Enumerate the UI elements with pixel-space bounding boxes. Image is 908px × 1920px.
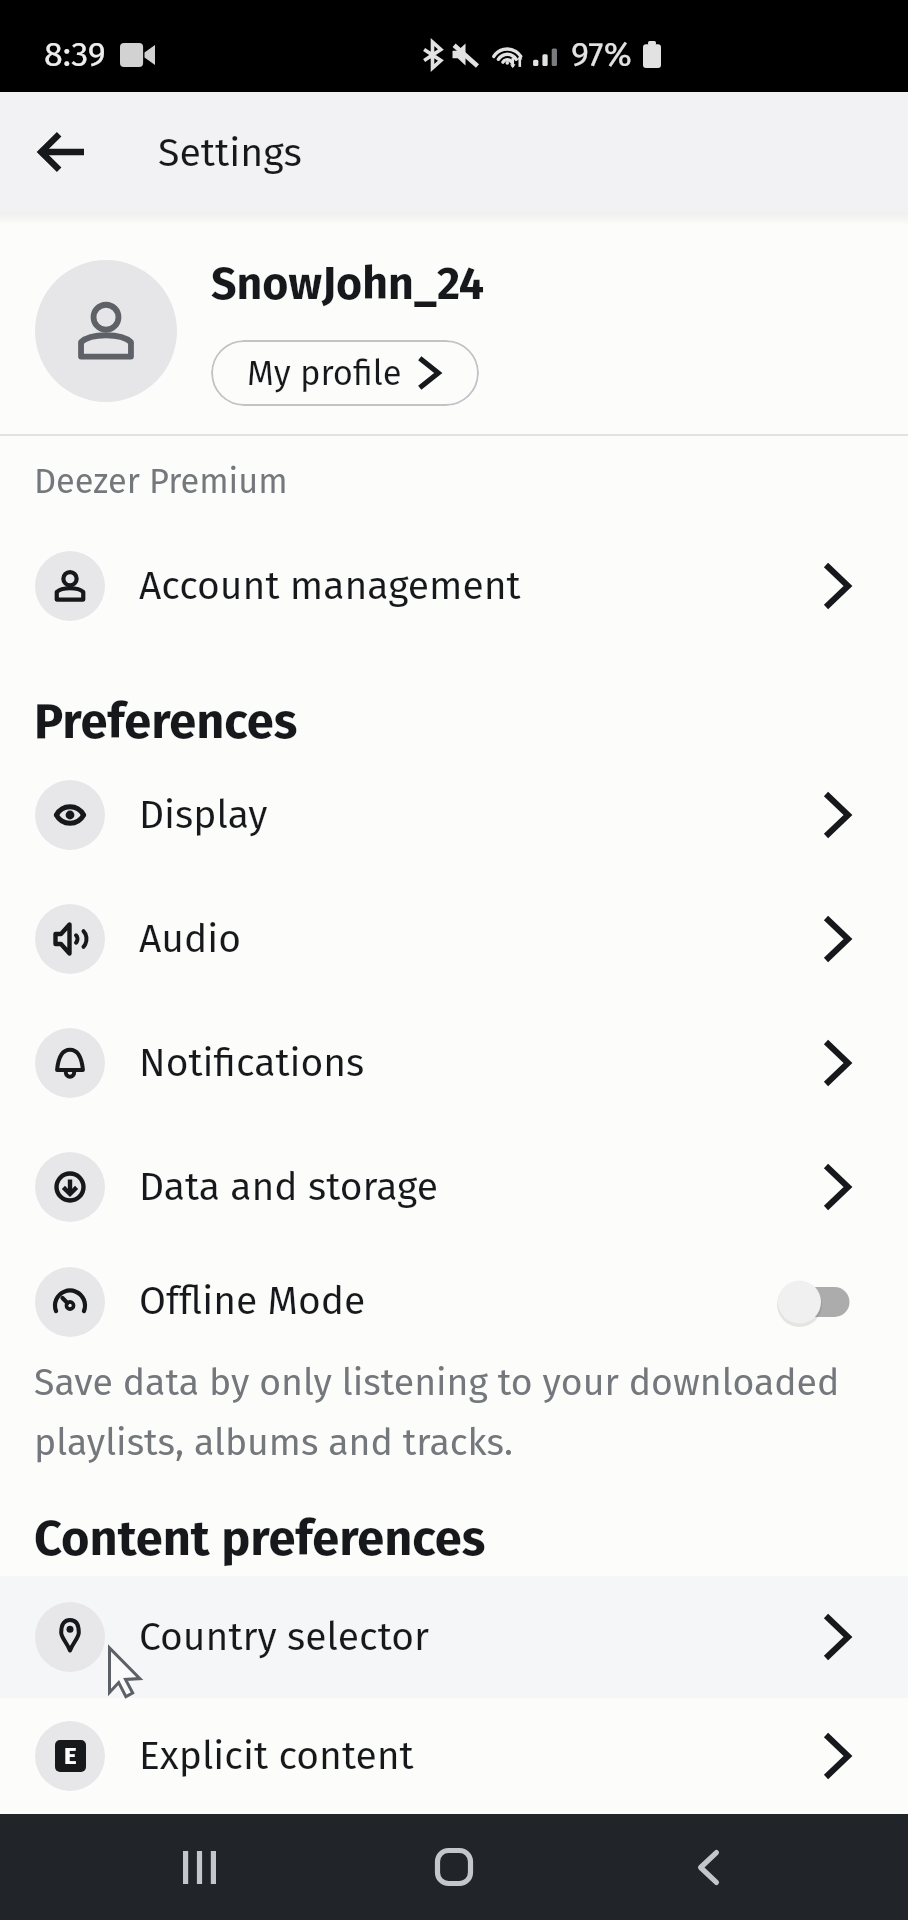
- staticText: Settings: [158, 129, 302, 176]
- button[interactable]: Display: [0, 753, 908, 877]
- staticText: Data and storage: [139, 1164, 823, 1211]
- button[interactable]: Audio: [0, 877, 908, 1001]
- button[interactable]: Country selector: [0, 1576, 908, 1698]
- staticText: Content preferences: [34, 1509, 486, 1568]
- button[interactable]: Notifications: [0, 1001, 908, 1125]
- staticText: Display: [139, 792, 823, 839]
- staticText: Audio: [139, 916, 823, 963]
- button[interactable]: My profile: [211, 340, 479, 406]
- button[interactable]: Recent apps: [144, 1814, 254, 1920]
- staticText: My profile: [247, 353, 402, 394]
- staticText: E: [64, 1742, 77, 1771]
- button[interactable]: E: [0, 1698, 908, 1814]
- staticText: Country selector: [139, 1614, 823, 1661]
- staticText: 8:39: [44, 34, 106, 75]
- staticText: Offline Mode: [139, 1278, 775, 1325]
- button[interactable]: SnowJohn_24: [0, 212, 908, 434]
- staticText: SnowJohn_24: [211, 257, 485, 311]
- staticText: Explicit content: [139, 1733, 823, 1780]
- staticText: Save data by only listening to your down…: [34, 1360, 878, 1465]
- button[interactable]: Home: [399, 1814, 509, 1920]
- staticText: Deezer Premium: [34, 461, 288, 502]
- staticText: Account management: [139, 563, 823, 610]
- staticText: Preferences: [34, 692, 298, 751]
- staticText: Notifications: [139, 1040, 823, 1087]
- button[interactable]: Offline Mode: [775, 1276, 851, 1328]
- staticText: 97%: [571, 34, 632, 75]
- button[interactable]: Back: [653, 1814, 763, 1920]
- button[interactable]: Account management: [0, 536, 908, 636]
- button[interactable]: Back: [16, 107, 106, 197]
- button[interactable]: Offline Mode: [0, 1249, 908, 1354]
- button[interactable]: Data and storage: [0, 1125, 908, 1249]
